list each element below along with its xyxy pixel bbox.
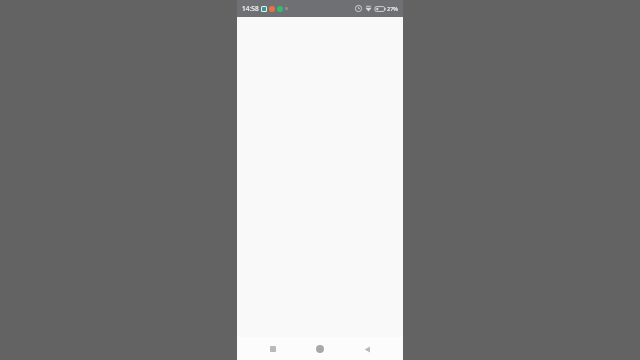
button[interactable]: Back: [356, 338, 378, 360]
staticText: 27%: [387, 5, 398, 12]
staticText: 14:58: [242, 4, 259, 13]
button[interactable]: Recent apps: [262, 338, 284, 360]
button[interactable]: Home: [309, 338, 331, 360]
